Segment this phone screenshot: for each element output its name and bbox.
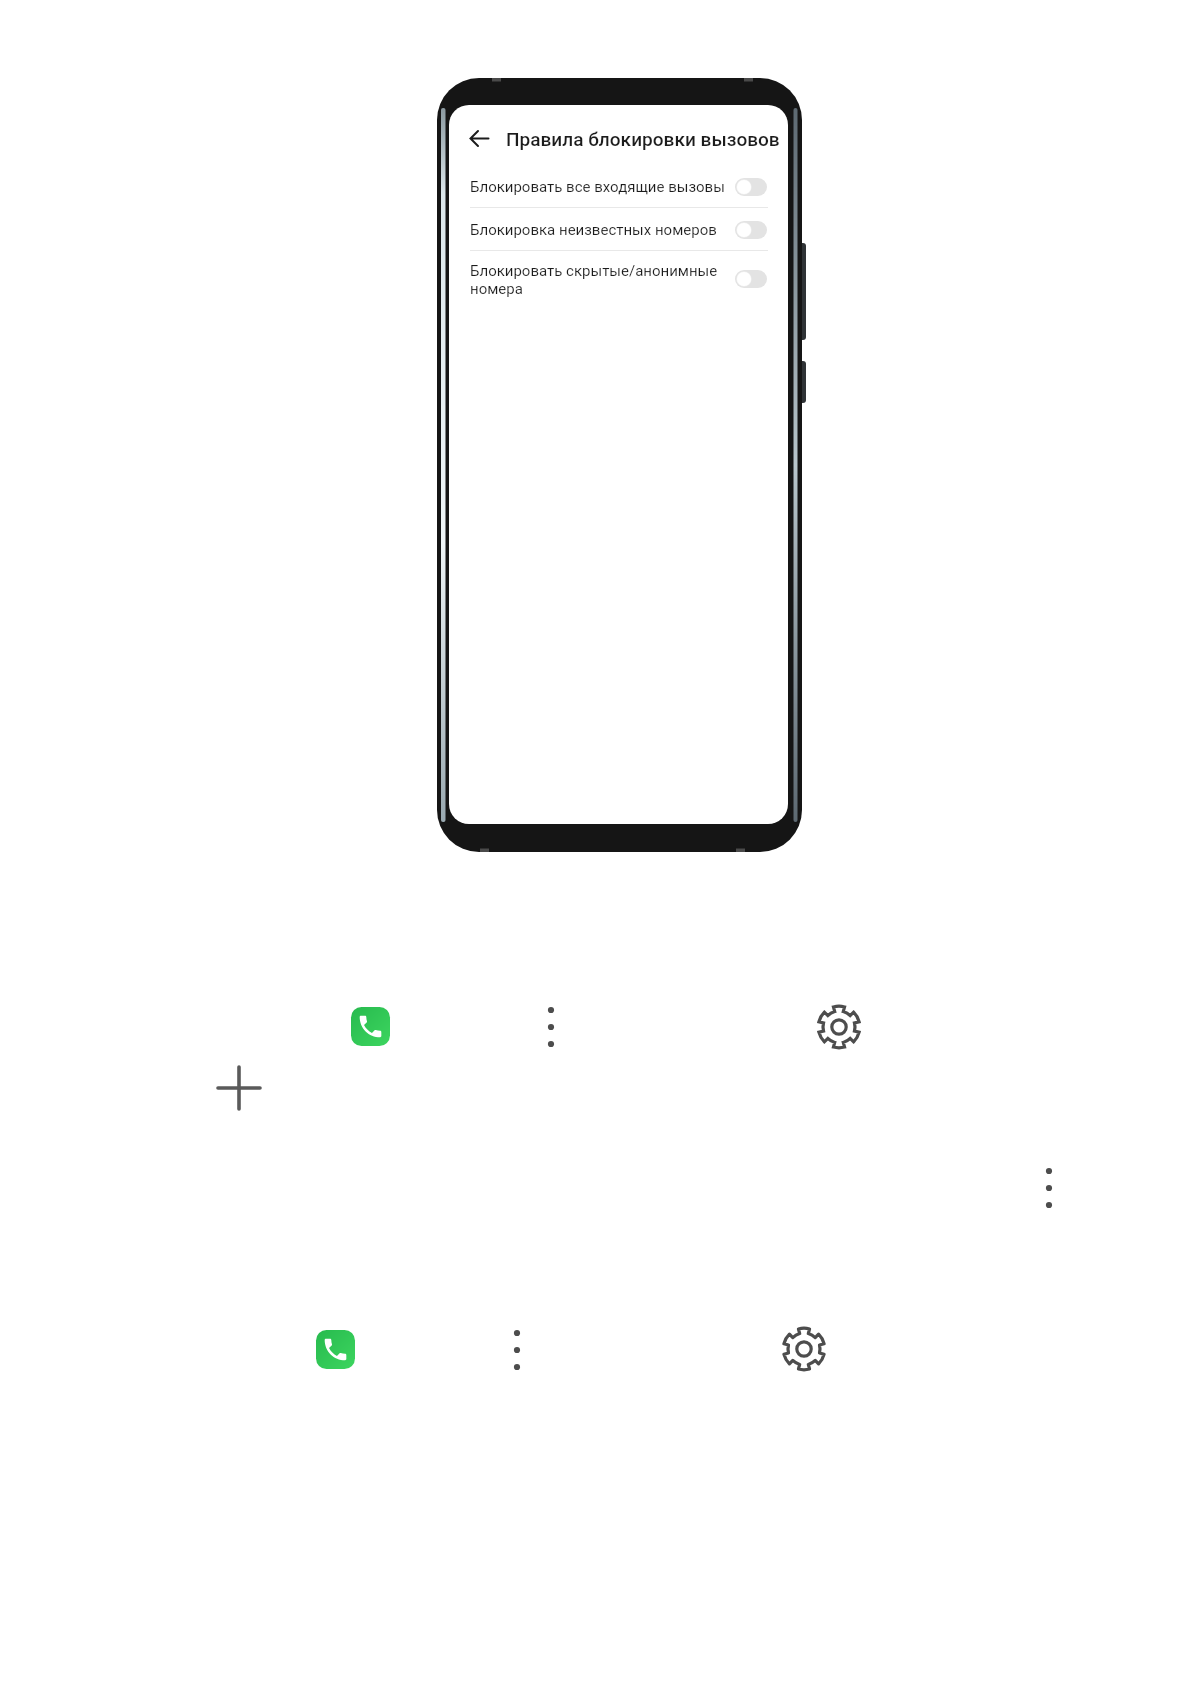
button[interactable]: [216, 1065, 262, 1111]
button[interactable]: [816, 1004, 862, 1050]
button[interactable]: [449, 254, 788, 294]
button[interactable]: [505, 1321, 529, 1379]
staticText: Блокировать скрытые/анонимные номера: [470, 262, 718, 298]
button[interactable]: [449, 170, 788, 210]
button[interactable]: [459, 118, 499, 158]
button[interactable]: [539, 998, 563, 1056]
button[interactable]: [735, 221, 767, 239]
button[interactable]: [781, 1326, 827, 1372]
button[interactable]: [735, 270, 767, 288]
button[interactable]: [351, 1007, 390, 1046]
button[interactable]: [316, 1330, 355, 1369]
staticText: Блокировать все входящие вызовы: [470, 178, 725, 196]
button[interactable]: [1037, 1159, 1061, 1217]
button[interactable]: [449, 213, 788, 253]
button[interactable]: [735, 178, 767, 196]
staticText: Блокировка неизвестных номеров: [470, 221, 717, 239]
staticText: Правила блокировки вызовов: [506, 128, 780, 150]
